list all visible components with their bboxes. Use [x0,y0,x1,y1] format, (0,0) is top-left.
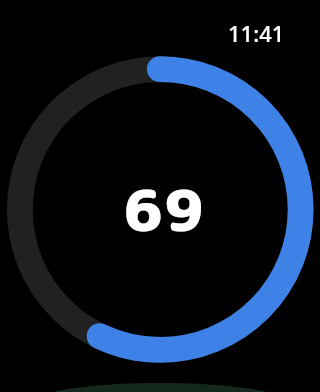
staticText: 11:41 [228,18,285,48]
button[interactable]: Daily goal progress, 69 percent [0,0,320,392]
staticText: 69 [124,171,205,249]
